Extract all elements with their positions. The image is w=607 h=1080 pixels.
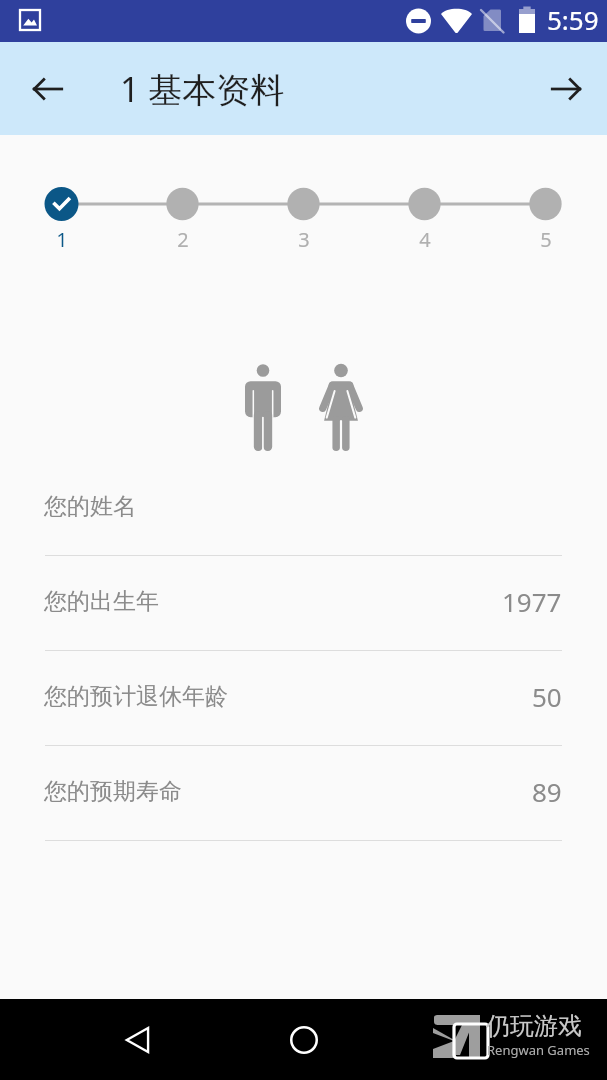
staticText: 50 [532,679,562,714]
staticText: 1977 [502,584,562,619]
staticText: 仍玩游戏 [486,1011,582,1041]
button[interactable]: 您的出生年 [0,556,607,651]
button[interactable]: 您的预计退休年龄 [0,651,607,746]
button[interactable]: 您的预期寿命 [0,746,607,841]
staticText: Rengwan Games [487,1041,590,1059]
button[interactable]: 您的姓名 [0,461,607,556]
staticText: 2 [163,226,203,253]
staticText: 5:59 [547,2,599,37]
staticText: 1 基本资料 [120,66,285,112]
button[interactable]: Next [538,61,594,117]
staticText: 89 [532,774,562,809]
staticText: 您的预期寿命 [44,777,182,806]
button[interactable]: Home [276,1012,332,1068]
button[interactable]: Back [110,1012,166,1068]
staticText: 您的出生年 [44,587,159,616]
button[interactable]: Back [20,61,76,117]
staticText: 3 [284,226,324,253]
staticText: 5 [526,226,566,253]
staticText: 您的姓名 [44,492,136,521]
staticText: 4 [405,226,445,253]
staticText: 1 [42,226,82,253]
staticText: 您的预计退休年龄 [44,682,228,711]
